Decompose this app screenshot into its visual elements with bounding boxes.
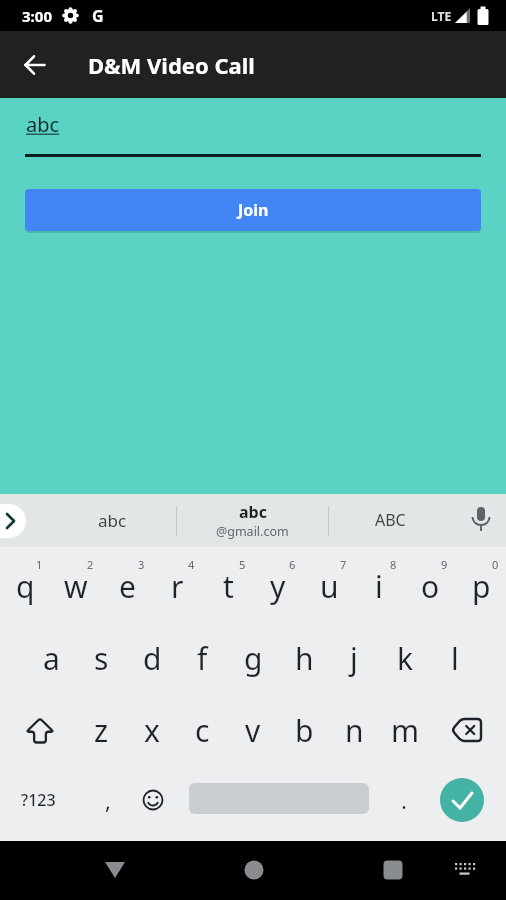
staticText: x bbox=[144, 710, 160, 751]
button[interactable]: l bbox=[430, 627, 480, 689]
staticText: w bbox=[64, 566, 88, 607]
button[interactable]: h bbox=[279, 627, 329, 689]
button[interactable] bbox=[434, 702, 498, 758]
button[interactable]: o bbox=[405, 555, 455, 617]
staticText: abc bbox=[98, 509, 127, 532]
staticText: b bbox=[295, 710, 314, 751]
staticText: ABC bbox=[375, 509, 406, 531]
staticText: D&M Video Call bbox=[88, 50, 255, 80]
button[interactable]: v bbox=[228, 700, 278, 760]
staticText: 3 bbox=[138, 557, 145, 571]
button[interactable]: r bbox=[152, 555, 202, 617]
button[interactable] bbox=[444, 849, 486, 891]
staticText: @gmail.com bbox=[216, 523, 289, 540]
staticText: s bbox=[94, 638, 109, 679]
staticText: i bbox=[375, 566, 383, 607]
staticText: h bbox=[295, 638, 314, 679]
staticText: 6 bbox=[289, 557, 296, 571]
button[interactable]: k bbox=[380, 627, 430, 689]
staticText: v bbox=[245, 710, 261, 751]
button[interactable]: abc bbox=[26, 111, 146, 145]
staticText: LTE bbox=[431, 8, 452, 24]
button[interactable]: j bbox=[329, 627, 379, 689]
button[interactable]: abc bbox=[67, 500, 157, 540]
staticText: e bbox=[119, 566, 136, 607]
staticText: a bbox=[43, 638, 60, 679]
staticText: z bbox=[94, 710, 109, 751]
button[interactable]: , bbox=[86, 780, 130, 820]
staticText: 7 bbox=[340, 557, 347, 571]
staticText: abc bbox=[26, 111, 60, 138]
staticText: y bbox=[270, 566, 286, 607]
button[interactable]: w bbox=[51, 555, 101, 617]
button[interactable]: e bbox=[102, 555, 152, 617]
staticText: 5 bbox=[239, 557, 246, 571]
staticText: o bbox=[421, 566, 440, 607]
staticText: u bbox=[320, 566, 339, 607]
button[interactable] bbox=[233, 849, 275, 891]
button[interactable]: c bbox=[177, 700, 227, 760]
staticText: ?123 bbox=[21, 789, 56, 811]
button[interactable] bbox=[8, 702, 72, 758]
staticText: abc bbox=[239, 501, 267, 523]
staticText: q bbox=[16, 566, 35, 607]
staticText: Join bbox=[238, 199, 269, 221]
button[interactable]: n bbox=[329, 700, 379, 760]
button[interactable]: b bbox=[279, 700, 329, 760]
button[interactable]: f bbox=[177, 627, 227, 689]
staticText: r bbox=[171, 566, 184, 607]
button[interactable]: g bbox=[228, 627, 278, 689]
staticText: p bbox=[472, 566, 491, 607]
button[interactable]: d bbox=[127, 627, 177, 689]
button[interactable]: x bbox=[127, 700, 177, 760]
button[interactable]: ?123 bbox=[6, 780, 70, 820]
button[interactable] bbox=[0, 504, 26, 538]
staticText: d bbox=[143, 638, 162, 679]
staticText: 8 bbox=[390, 557, 397, 571]
button[interactable]: u bbox=[304, 555, 354, 617]
button[interactable]: ABC bbox=[345, 500, 435, 540]
staticText: 0 bbox=[492, 557, 499, 571]
staticText: , bbox=[105, 785, 111, 815]
staticText: k bbox=[397, 638, 414, 679]
staticText: n bbox=[345, 710, 364, 751]
staticText: . bbox=[401, 785, 407, 815]
button[interactable] bbox=[94, 849, 136, 891]
button[interactable]: p bbox=[456, 555, 506, 617]
staticText: 2 bbox=[87, 557, 94, 571]
staticText: 9 bbox=[441, 557, 448, 571]
button[interactable] bbox=[131, 780, 175, 820]
button[interactable]: q bbox=[0, 555, 50, 617]
button[interactable]: . bbox=[382, 780, 426, 820]
staticText: 3:00 bbox=[22, 6, 52, 26]
staticText: j bbox=[350, 638, 358, 679]
staticText: m bbox=[391, 710, 420, 751]
button[interactable]: Join bbox=[25, 189, 481, 231]
staticText: c bbox=[195, 710, 210, 751]
staticText: G bbox=[92, 5, 104, 27]
button[interactable]: m bbox=[380, 700, 430, 760]
button[interactable]: y bbox=[253, 555, 303, 617]
staticText: t bbox=[223, 566, 234, 607]
staticText: g bbox=[244, 638, 263, 679]
staticText: f bbox=[197, 638, 208, 679]
staticText: 4 bbox=[188, 557, 195, 571]
button[interactable] bbox=[0, 31, 70, 98]
button[interactable] bbox=[440, 778, 484, 822]
button[interactable]: i bbox=[354, 555, 404, 617]
staticText: l bbox=[451, 638, 459, 679]
button[interactable] bbox=[461, 500, 501, 540]
button[interactable]: abc bbox=[182, 495, 322, 546]
button[interactable]: s bbox=[76, 627, 126, 689]
button[interactable]: t bbox=[203, 555, 253, 617]
button[interactable]: z bbox=[76, 700, 126, 760]
button[interactable]: a bbox=[26, 627, 76, 689]
staticText: 1 bbox=[36, 557, 43, 571]
button[interactable] bbox=[372, 849, 414, 891]
